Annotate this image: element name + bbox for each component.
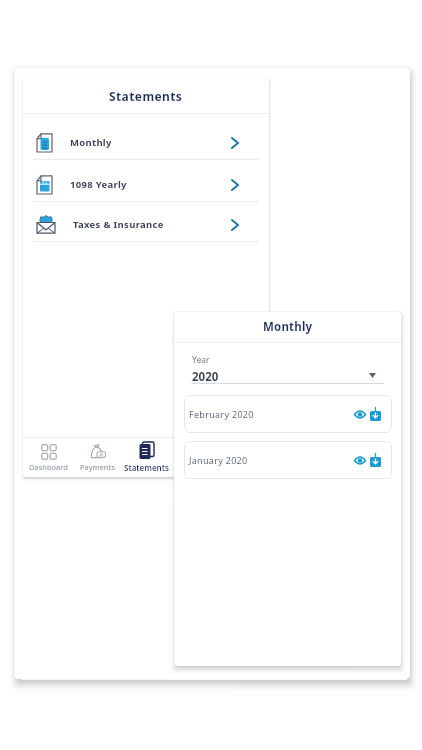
- button[interactable]: [370, 453, 381, 467]
- staticText: 1098 Yearly: [70, 178, 127, 191]
- button[interactable]: [370, 407, 381, 421]
- button[interactable]: Payments: [73, 438, 122, 477]
- button[interactable]: [354, 410, 366, 419]
- staticText: Statements: [124, 462, 169, 473]
- staticText: February 2020: [189, 408, 254, 420]
- staticText: Dashboard: [29, 462, 68, 472]
- button[interactable]: 1098 Yearly: [23, 160, 269, 201]
- button[interactable]: [354, 456, 366, 465]
- staticText: 2020: [192, 369, 219, 385]
- button[interactable]: Monthly: [23, 114, 269, 159]
- staticText: January 2020: [189, 454, 248, 466]
- staticText: Payments: [80, 462, 115, 472]
- staticText: Taxes & Insurance: [73, 218, 164, 231]
- staticText: Statements: [109, 88, 183, 104]
- staticText: Monthly: [263, 319, 313, 335]
- staticText: Year: [192, 354, 210, 366]
- button[interactable]: Taxes & Insurance: [23, 202, 269, 241]
- button[interactable]: Statements: [122, 438, 171, 477]
- button[interactable]: Year: [192, 354, 219, 385]
- button[interactable]: January 2020: [184, 441, 392, 479]
- button[interactable]: February 2020: [184, 395, 392, 433]
- button[interactable]: Dashboard: [23, 438, 73, 477]
- staticText: Monthly: [70, 136, 112, 149]
